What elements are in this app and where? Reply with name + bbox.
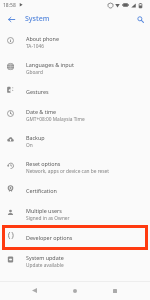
- button[interactable]: Reset options: [0, 152, 150, 178]
- staticText: Gestures: [26, 88, 49, 95]
- button[interactable]: Recent apps: [105, 281, 125, 300]
- button[interactable]: Languages & input: [0, 53, 150, 79]
- button[interactable]: Search: [134, 13, 147, 26]
- staticText: Network, apps or device can be reset: [26, 168, 110, 175]
- staticText: GMT+08:00 Malaysia Time: [26, 116, 85, 123]
- button[interactable]: Backup: [0, 126, 150, 152]
- button[interactable]: About phone: [0, 27, 150, 53]
- staticText: Languages & input: [26, 61, 74, 68]
- staticText: Reset options: [26, 160, 61, 167]
- staticText: Certification: [26, 187, 57, 194]
- staticText: About phone: [26, 35, 59, 42]
- button[interactable]: Date & time: [0, 100, 150, 126]
- button[interactable]: Developer options: [0, 225, 150, 246]
- staticText: Signed in as Owner: [26, 215, 70, 222]
- staticText: Gboard: [26, 69, 43, 76]
- staticText: 18:58: [3, 2, 16, 9]
- button[interactable]: Certification: [0, 178, 150, 199]
- button[interactable]: Gestures: [0, 79, 150, 100]
- staticText: Update available: [26, 262, 64, 269]
- staticText: TA-1046: [26, 43, 44, 50]
- button[interactable]: Multiple users: [0, 199, 150, 225]
- staticText: On: [26, 142, 33, 149]
- button[interactable]: Navigate up: [4, 12, 18, 26]
- staticText: Developer options: [26, 234, 73, 241]
- staticText: Backup: [26, 134, 45, 141]
- button[interactable]: Back: [24, 281, 44, 300]
- staticText: System: [25, 14, 50, 24]
- staticText: Multiple users: [26, 207, 62, 214]
- staticText: System update: [26, 254, 64, 261]
- button[interactable]: Home: [65, 281, 85, 300]
- button[interactable]: System update: [0, 246, 150, 272]
- staticText: Date & time: [26, 108, 57, 115]
